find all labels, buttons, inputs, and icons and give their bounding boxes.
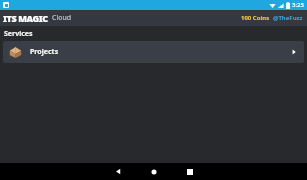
staticText: Projects: [30, 47, 59, 57]
staticText: ITS MAGIC: [3, 12, 48, 24]
button[interactable]: @TheFuzz: [273, 14, 303, 22]
staticText: 3:25: [292, 1, 304, 9]
button[interactable]: 100 Coins: [241, 14, 270, 22]
other: Open Projects: [290, 48, 298, 56]
button[interactable]: Back: [100, 163, 136, 180]
button[interactable]: Projects: [3, 41, 304, 63]
staticText: Cloud: [52, 13, 72, 23]
staticText: Services: [4, 29, 33, 39]
button[interactable]: ITS MAGIC: [3, 12, 72, 24]
button[interactable]: Home: [136, 163, 172, 180]
button[interactable]: Recent apps: [172, 163, 208, 180]
